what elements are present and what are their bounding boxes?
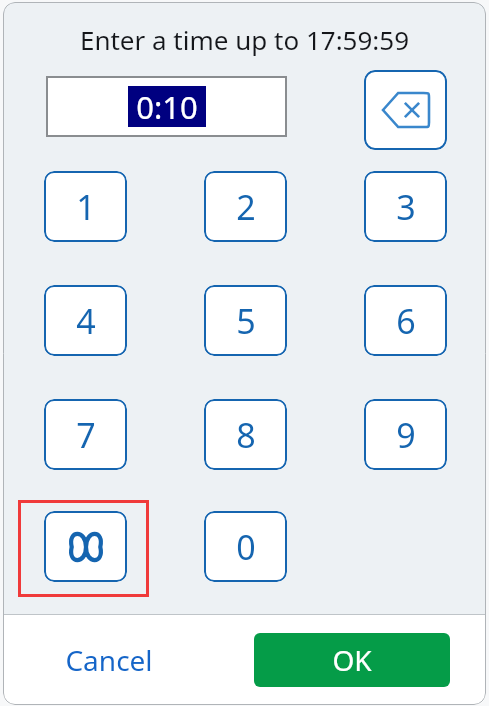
- staticText: 5: [236, 298, 256, 344]
- button[interactable]: 5: [204, 285, 287, 356]
- button[interactable]: 0: [204, 511, 287, 582]
- staticText: 8: [236, 412, 256, 458]
- staticText: Enter a time up to 17:59:59: [3, 22, 486, 57]
- staticText: Cancel: [65, 641, 153, 679]
- button[interactable]: Cancel: [51, 633, 167, 687]
- staticText: 0: [236, 524, 256, 570]
- staticText: 1: [76, 184, 96, 230]
- staticText: 2: [236, 184, 256, 230]
- button[interactable]: OK: [254, 633, 450, 687]
- button[interactable]: 8: [204, 399, 287, 470]
- button[interactable]: 2: [204, 171, 287, 242]
- staticText: 0:10: [136, 86, 198, 127]
- staticText: 3: [396, 184, 416, 230]
- staticText: 9: [396, 412, 416, 458]
- staticText: OK: [332, 641, 372, 679]
- button[interactable]: Backspace: [364, 70, 447, 150]
- button[interactable]: [44, 511, 127, 582]
- staticText: 4: [76, 298, 96, 344]
- button[interactable]: 0:10: [46, 76, 287, 137]
- staticText: 7: [76, 412, 96, 458]
- button[interactable]: 6: [364, 285, 447, 356]
- button[interactable]: 9: [364, 399, 447, 470]
- button[interactable]: 7: [44, 399, 127, 470]
- staticText: 6: [396, 298, 416, 344]
- button[interactable]: 3: [364, 171, 447, 242]
- button[interactable]: 4: [44, 285, 127, 356]
- button[interactable]: 1: [44, 171, 127, 242]
